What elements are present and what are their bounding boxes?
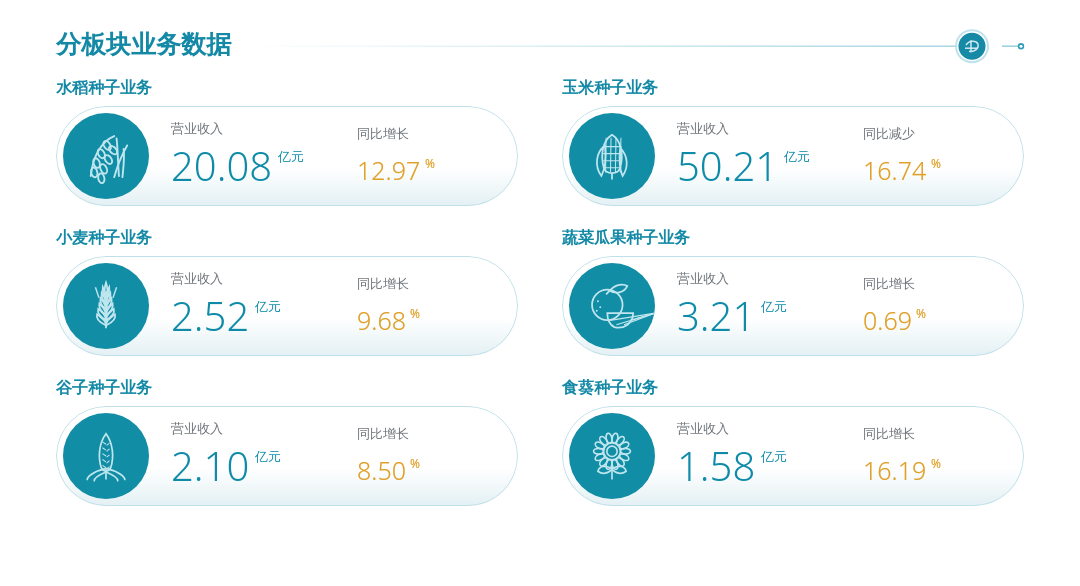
staticText: 营业收入 — [677, 120, 729, 136]
button[interactable]: 谷子种子业务 — [56, 406, 518, 506]
staticText: 16.19 — [863, 453, 927, 487]
other: 小麦种子业务 — [63, 263, 149, 349]
staticText: % — [931, 455, 941, 471]
button[interactable]: 玉米种子业务 — [562, 106, 1024, 206]
staticText: 50.21 — [677, 138, 779, 192]
staticText: 分板块业务数据 — [56, 29, 231, 60]
staticText: 同比增长 — [863, 425, 915, 441]
other: 谷子种子业务 — [63, 413, 149, 499]
staticText: % — [425, 155, 435, 171]
staticText: 营业收入 — [677, 270, 729, 286]
staticText: 蔬菜瓜果种子业务 — [562, 228, 690, 248]
button[interactable]: 食葵种子业务 — [562, 406, 1024, 506]
button[interactable]: 蔬菜瓜果种子业务 — [562, 256, 1024, 356]
staticText: 营业收入 — [677, 420, 729, 436]
other: 食葵种子业务 — [569, 413, 655, 499]
button[interactable]: 小麦种子业务 — [56, 256, 518, 356]
staticText: 营业收入 — [171, 120, 223, 136]
staticText: 亿元 — [278, 148, 304, 164]
staticText: 亿元 — [255, 448, 281, 464]
staticText: 同比增长 — [357, 425, 409, 441]
staticText: 同比增长 — [863, 275, 915, 291]
staticText: 玉米种子业务 — [562, 78, 658, 98]
staticText: % — [410, 455, 420, 471]
staticText: 20.08 — [171, 138, 273, 192]
staticText: 8.50 — [357, 453, 406, 487]
staticText: 食葵种子业务 — [562, 378, 658, 398]
staticText: % — [410, 305, 420, 321]
staticText: 营业收入 — [171, 270, 223, 286]
staticText: 3.21 — [677, 288, 756, 342]
staticText: 9.68 — [357, 303, 406, 337]
other: 蔬菜瓜果种子业务 — [569, 263, 655, 349]
staticText: 1.58 — [677, 438, 756, 492]
staticText: 同比减少 — [863, 125, 915, 141]
staticText: % — [916, 305, 926, 321]
staticText: 亿元 — [255, 298, 281, 314]
other: 水稻种子业务 — [63, 113, 149, 199]
staticText: 营业收入 — [171, 420, 223, 436]
staticText: 亿元 — [761, 448, 787, 464]
other: 玉米种子业务 — [569, 113, 655, 199]
staticText: 小麦种子业务 — [56, 228, 152, 248]
staticText: 0.69 — [863, 303, 912, 337]
staticText: 谷子种子业务 — [56, 378, 152, 398]
staticText: 水稻种子业务 — [56, 78, 152, 98]
staticText: 16.74 — [863, 153, 927, 187]
button[interactable]: 水稻种子业务 — [56, 106, 518, 206]
staticText: 12.97 — [357, 153, 421, 187]
staticText: 同比增长 — [357, 125, 409, 141]
staticText: % — [931, 155, 941, 171]
staticText: 2.52 — [171, 288, 250, 342]
staticText: 亿元 — [761, 298, 787, 314]
staticText: 2.10 — [171, 438, 250, 492]
staticText: 亿元 — [784, 148, 810, 164]
staticText: 同比增长 — [357, 275, 409, 291]
